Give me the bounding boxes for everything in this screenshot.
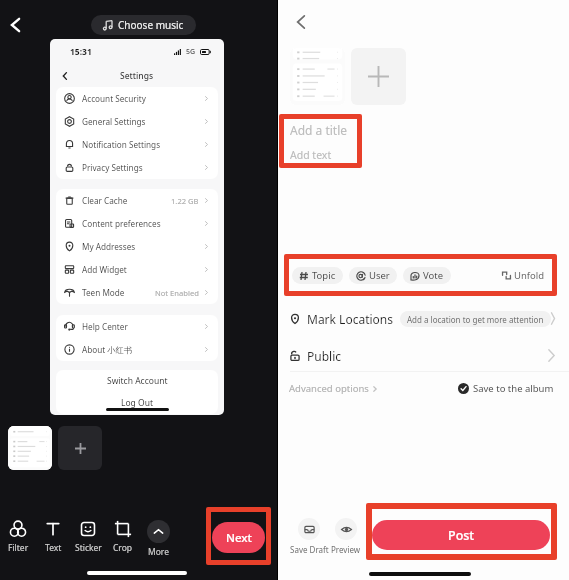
button[interactable]: Log Out [56, 392, 218, 414]
staticText: Add a title [290, 122, 348, 138]
button[interactable]: Back [284, 5, 318, 39]
button[interactable]: Add image [351, 48, 406, 105]
staticText: General Settings [82, 116, 146, 127]
button[interactable]: About 小红书 [64, 338, 210, 361]
staticText: 1.22 GB [171, 196, 199, 206]
button[interactable]: Account Security [64, 87, 210, 110]
staticText: Sticker [75, 542, 102, 554]
staticText: Teen Mode [82, 287, 125, 298]
staticText: Privacy Settings [82, 162, 143, 173]
staticText: Preview [331, 544, 361, 555]
button[interactable]: Teen Mode [64, 281, 210, 304]
button[interactable]: Add Widget [64, 258, 210, 281]
staticText: Text [45, 542, 62, 554]
button[interactable]: Add text [290, 145, 332, 165]
button[interactable]: Text [33, 520, 73, 554]
staticText: Vote [423, 269, 444, 282]
staticText: Settings [120, 70, 154, 82]
staticText: Crop [113, 542, 133, 554]
staticText: Topic [312, 269, 336, 282]
staticText: Add a location to get more attention [407, 314, 544, 325]
button[interactable]: Vote [403, 267, 451, 284]
staticText: Log Out [121, 397, 153, 409]
button[interactable]: Sticker [68, 520, 108, 554]
staticText: Save Draft [290, 544, 329, 555]
staticText: Next [226, 530, 252, 546]
button[interactable]: Crop [103, 520, 143, 554]
staticText: Clear Cache [82, 195, 128, 206]
staticText: My Addresses [82, 241, 136, 252]
button[interactable]: Mark Locations [289, 300, 555, 337]
button[interactable]: More [138, 520, 178, 558]
button[interactable]: Save to the album [458, 382, 554, 395]
staticText: 15:31 [70, 46, 92, 58]
button[interactable]: Add image [58, 426, 102, 470]
staticText: Save to the album [473, 382, 554, 395]
staticText: User [369, 269, 390, 282]
button[interactable]: User [349, 267, 397, 284]
button[interactable]: My Addresses [64, 235, 210, 258]
button[interactable]: Save Draft [291, 518, 327, 555]
button[interactable]: Notification Settings [64, 133, 210, 156]
button[interactable]: Post [372, 520, 550, 550]
staticText: More [148, 546, 169, 558]
button[interactable]: Advanced options [289, 382, 379, 395]
staticText: Help Center [82, 321, 128, 332]
staticText: Content preferences [82, 218, 161, 229]
staticText: About 小红书 [82, 344, 132, 355]
button[interactable]: Preview [331, 518, 361, 555]
button[interactable]: General Settings [64, 110, 210, 133]
staticText: Add text [290, 148, 332, 162]
staticText: Not Enabled [155, 288, 199, 298]
staticText: Switch Account [107, 375, 168, 387]
button[interactable]: Help Center [64, 315, 210, 338]
button[interactable]: Clear Cache [64, 189, 210, 212]
staticText: Filter [8, 542, 29, 554]
button[interactable]: Switch Account [56, 370, 218, 392]
staticText: 5G [186, 47, 196, 57]
button[interactable]: Next [212, 522, 265, 553]
button[interactable]: Add a title [290, 119, 348, 141]
button[interactable] [290, 48, 345, 105]
staticText: Advanced options [289, 382, 369, 395]
button[interactable]: Privacy Settings [64, 156, 210, 179]
button[interactable]: Public [289, 337, 555, 374]
staticText: Unfold [514, 269, 545, 282]
staticText: Add Widget [82, 264, 127, 275]
button[interactable]: Content preferences [64, 212, 210, 235]
button[interactable]: Topic [292, 267, 343, 284]
staticText: Public [307, 348, 342, 364]
staticText: Notification Settings [82, 139, 161, 150]
staticText: Post [448, 527, 475, 544]
staticText: Account Security [82, 93, 146, 104]
button[interactable] [8, 426, 52, 470]
button[interactable]: Filter [0, 520, 38, 554]
staticText: Choose music [118, 18, 184, 32]
button[interactable]: Choose music [91, 15, 196, 35]
button[interactable]: Back [0, 8, 32, 42]
staticText: Mark Locations [307, 311, 393, 327]
button[interactable]: Unfold [502, 269, 545, 282]
